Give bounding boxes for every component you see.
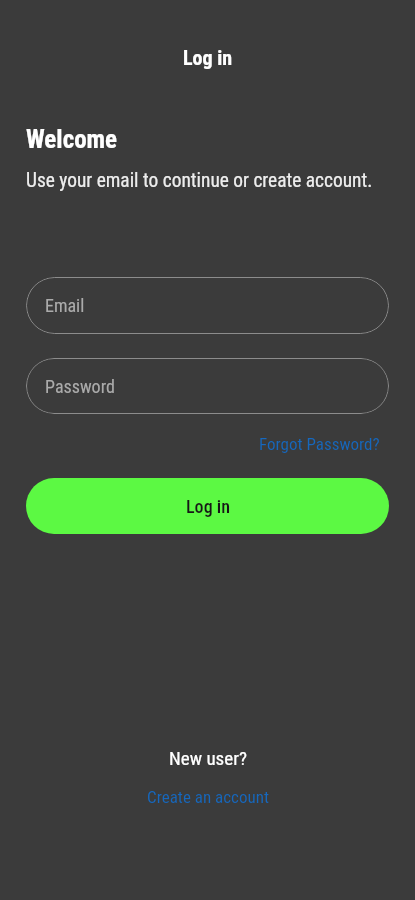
staticText: Welcome bbox=[26, 125, 118, 154]
staticText: Forgot Password? bbox=[259, 434, 380, 454]
staticText: Create an account bbox=[147, 787, 269, 807]
staticText: Email bbox=[45, 295, 85, 316]
button[interactable]: Create an account bbox=[147, 787, 269, 807]
button[interactable]: Email bbox=[26, 277, 389, 334]
button[interactable]: Password bbox=[26, 358, 389, 414]
button[interactable]: Log in bbox=[26, 478, 389, 534]
staticText: Use your email to continue or create acc… bbox=[26, 169, 373, 192]
staticText: Password bbox=[45, 376, 115, 397]
staticText: Log in bbox=[183, 46, 233, 69]
button[interactable]: Forgot Password? bbox=[259, 434, 380, 454]
staticText: Log in bbox=[186, 496, 230, 517]
staticText: New user? bbox=[169, 747, 247, 769]
